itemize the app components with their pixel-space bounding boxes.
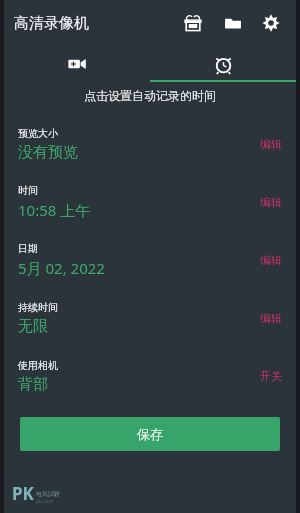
button[interactable]: 使用相机 xyxy=(4,347,296,405)
staticText: 日期 xyxy=(18,242,38,255)
staticText: 编辑 xyxy=(260,137,282,151)
staticText: 5月 02, 2022 xyxy=(18,258,105,278)
button[interactable]: 时间 xyxy=(4,173,296,231)
staticText: PK xyxy=(12,482,34,505)
button[interactable]: Settings xyxy=(254,6,288,40)
staticText: 电気試験 xyxy=(36,490,60,498)
staticText: 预览大小 xyxy=(18,127,58,140)
button[interactable]: Scheduled recording tab xyxy=(150,46,296,82)
staticText: 编辑 xyxy=(260,253,282,267)
staticText: 使用相机 xyxy=(18,359,58,372)
staticText: 编辑 xyxy=(260,195,282,209)
staticText: 时间 xyxy=(18,184,38,197)
staticText: 保存 xyxy=(137,426,163,442)
staticText: 点击设置自动记录的时间 xyxy=(4,88,296,103)
button[interactable]: 预览大小 xyxy=(4,115,296,173)
staticText: 开关 xyxy=(260,369,282,383)
button[interactable]: 日期 xyxy=(4,231,296,289)
staticText: pk.com xyxy=(36,498,54,505)
staticText: 编辑 xyxy=(260,311,282,325)
staticText: 背部 xyxy=(18,375,48,394)
staticText: 持续时间 xyxy=(18,301,58,314)
button[interactable]: 持续时间 xyxy=(4,289,296,347)
staticText: 高清录像机 xyxy=(14,14,89,33)
staticText: 没有预览 xyxy=(18,143,78,162)
button[interactable]: 保存 xyxy=(20,417,280,451)
button[interactable]: Folder xyxy=(216,6,250,40)
staticText: 无限 xyxy=(18,317,48,336)
button[interactable]: Video recorder tab xyxy=(4,46,150,82)
staticText: 10:58 上午 xyxy=(18,200,91,220)
button[interactable]: Ads gift xyxy=(176,6,210,40)
